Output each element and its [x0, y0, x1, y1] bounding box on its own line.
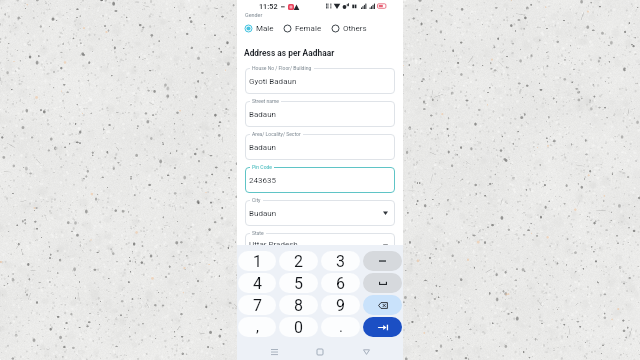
- button[interactable]: [245, 167, 395, 193]
- button[interactable]: 9: [321, 295, 360, 315]
- button[interactable]: 6: [321, 273, 360, 293]
- button[interactable]: 2: [279, 251, 318, 271]
- button[interactable]: 4: [238, 273, 276, 293]
- button[interactable]: [245, 68, 395, 94]
- staticText: Street name: [252, 98, 279, 104]
- staticText: Badaun: [249, 143, 277, 152]
- staticText: 0: [294, 318, 303, 337]
- button[interactable]: Others: [331, 24, 367, 33]
- staticText: .: [339, 318, 343, 336]
- staticText: 4: [253, 274, 262, 293]
- button[interactable]: 5: [279, 273, 318, 293]
- button[interactable]: [245, 134, 395, 160]
- staticText: 243635: [249, 176, 276, 185]
- button[interactable]: .: [321, 317, 360, 337]
- button[interactable]: Space: [363, 273, 402, 293]
- button[interactable]: Minus: [363, 251, 402, 271]
- staticText: Address as per Aadhaar: [244, 48, 335, 58]
- staticText: Male: [256, 24, 274, 33]
- staticText: Female: [295, 24, 322, 33]
- staticText: ,: [256, 318, 259, 336]
- button[interactable]: Female: [283, 24, 322, 33]
- staticText: 6: [336, 274, 345, 293]
- button[interactable]: [245, 233, 395, 259]
- button[interactable]: 7: [238, 295, 276, 315]
- button[interactable]: Back: [357, 343, 375, 360]
- button[interactable]: Home: [311, 343, 329, 360]
- button[interactable]: Recent apps: [265, 343, 283, 360]
- staticText: 7: [253, 296, 262, 315]
- button[interactable]: 1: [238, 251, 276, 271]
- staticText: City: [252, 197, 261, 203]
- button[interactable]: Backspace: [363, 295, 402, 315]
- staticText: Badaun: [249, 110, 277, 119]
- staticText: 2: [294, 252, 303, 271]
- button[interactable]: Next: [363, 317, 402, 337]
- staticText: 1: [253, 252, 262, 271]
- button[interactable]: [245, 200, 395, 226]
- staticText: Gender: [245, 12, 263, 18]
- staticText: State: [252, 230, 264, 236]
- staticText: Gyoti Badaun: [249, 77, 297, 86]
- staticText: Pin Code: [252, 164, 272, 170]
- button[interactable]: [245, 101, 395, 127]
- button[interactable]: ,: [238, 317, 276, 337]
- staticText: 11:52: [259, 2, 278, 10]
- staticText: 8: [294, 296, 303, 315]
- staticText: 9: [336, 296, 345, 315]
- staticText: House No / Floor/ Building: [252, 65, 312, 71]
- staticText: Others: [343, 24, 367, 33]
- staticText: Area/ Locality/ Sector: [252, 131, 301, 137]
- button[interactable]: 3: [321, 251, 360, 271]
- staticText: Uttar Pradesh: [249, 240, 298, 249]
- staticText: 3: [336, 252, 345, 271]
- staticText: 5: [294, 274, 303, 293]
- button[interactable]: Male: [244, 24, 274, 33]
- button[interactable]: 8: [279, 295, 318, 315]
- button[interactable]: 0: [279, 317, 318, 337]
- staticText: Budaun: [249, 209, 277, 218]
